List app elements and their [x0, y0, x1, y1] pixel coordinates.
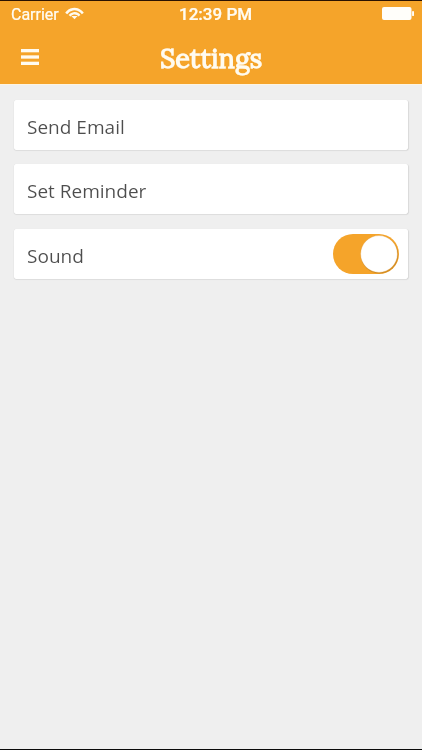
staticText: Settings	[160, 41, 263, 76]
button[interactable]: Sound toggle, on	[333, 234, 399, 274]
staticText: Sound	[27, 243, 84, 269]
staticText: 12:39 PM	[179, 4, 253, 24]
staticText: Carrier	[11, 5, 59, 24]
button[interactable]: Open navigation menu	[0, 32, 56, 84]
button[interactable]: Sound	[14, 229, 408, 279]
staticText: Set Reminder	[27, 178, 147, 204]
staticText: Send Email	[27, 114, 125, 140]
button[interactable]: Set Reminder	[14, 164, 408, 214]
button[interactable]: Send Email	[14, 100, 408, 150]
